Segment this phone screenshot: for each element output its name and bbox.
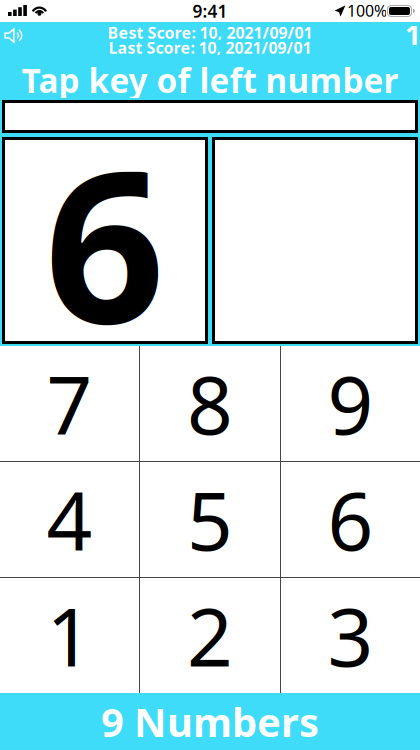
staticText: 6 [44,102,165,381]
button[interactable]: 9 [281,346,420,461]
staticText: Best Score: 10, 2021/09/01 [107,22,312,43]
staticText: 4 [46,466,92,573]
button[interactable]: Sound on [4,27,24,44]
button[interactable]: 5 [140,462,280,577]
button[interactable]: 6 [281,462,420,577]
staticText: 6 [327,466,373,573]
staticText: 8 [187,350,233,457]
button[interactable]: 3 [281,578,420,693]
staticText: 5 [187,466,233,573]
staticText: 100% [347,0,387,21]
button[interactable]: 8 [140,346,280,461]
button[interactable]: 1 [0,578,139,693]
button[interactable]: 4 [0,462,139,577]
staticText: 1 [46,582,92,689]
button[interactable]: 2 [140,578,280,693]
staticText: 9 Numbers [101,695,319,748]
staticText: Tap key of left number [21,58,398,102]
staticText: 9 [327,350,373,457]
staticText: 7 [46,350,92,457]
staticText: 1 [405,16,420,54]
staticText: Last Score: 10, 2021/09/01 [108,37,311,58]
staticText: 3 [327,582,373,689]
button[interactable]: 7 [0,346,139,461]
staticText: 9:41 [192,0,227,22]
staticText: 2 [187,582,233,689]
